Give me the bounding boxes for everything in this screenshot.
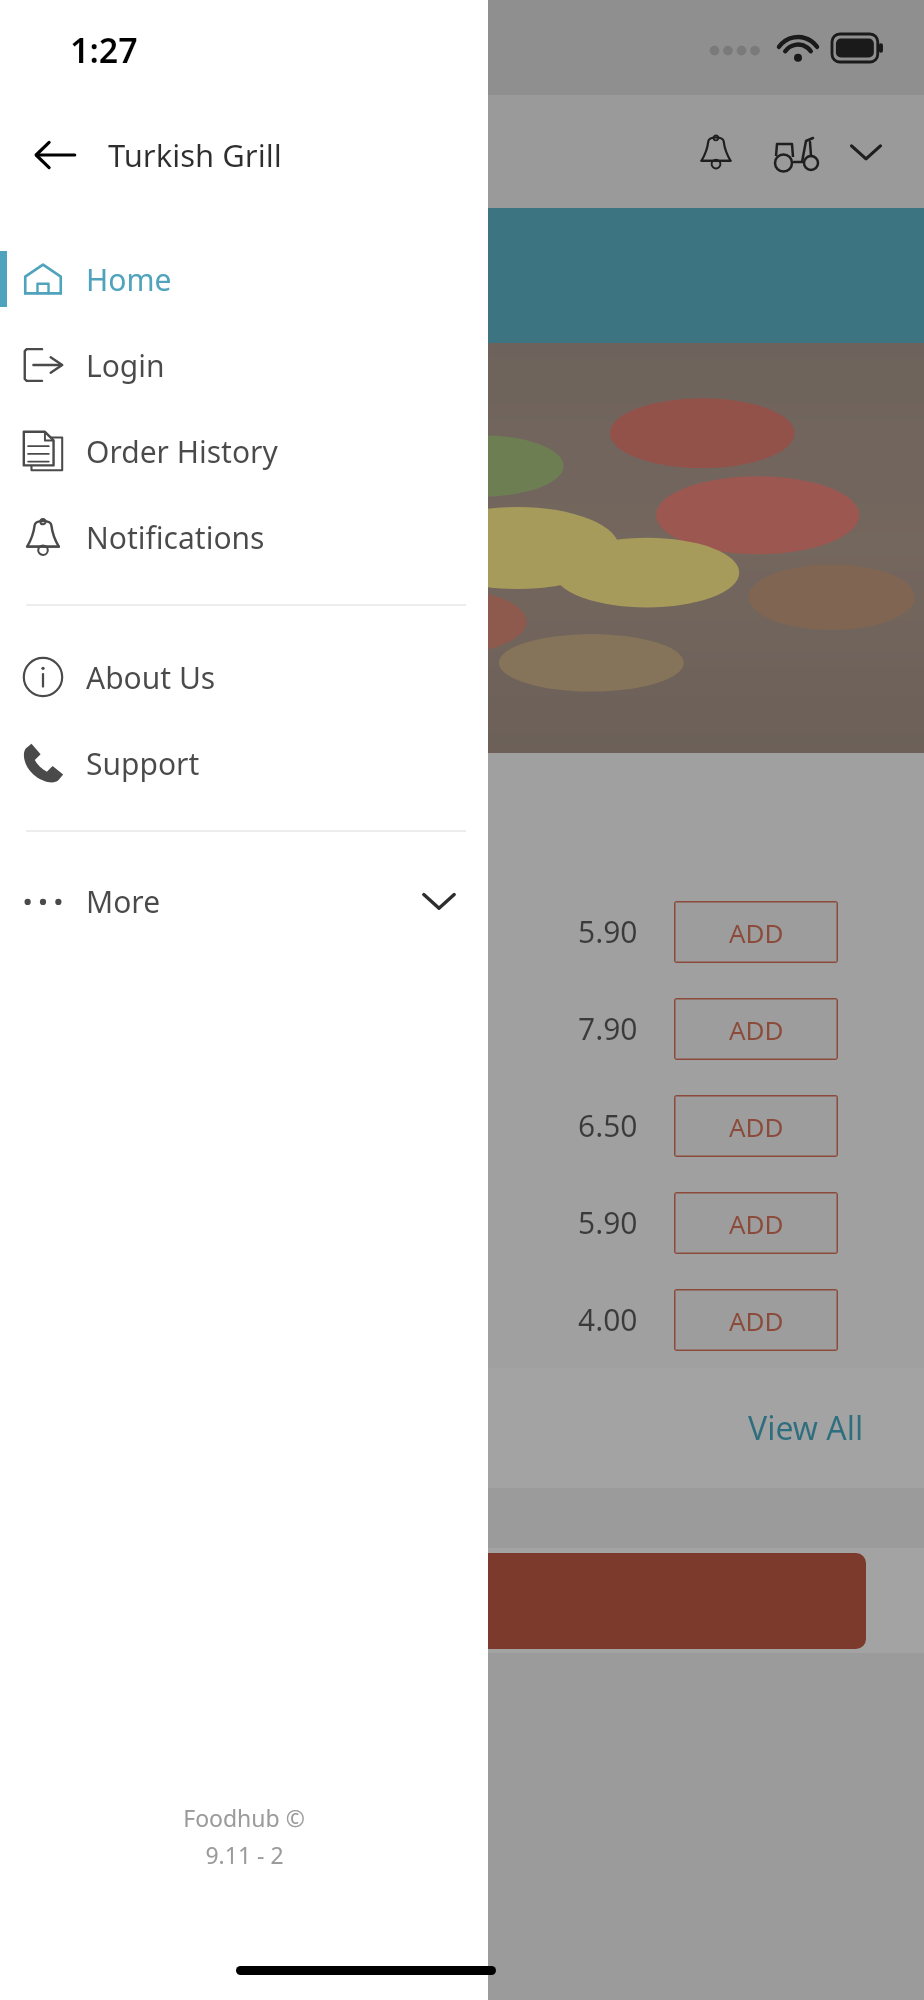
button[interactable]: Order History xyxy=(0,408,488,494)
staticText: View All xyxy=(748,1406,864,1450)
button[interactable]: About Us xyxy=(0,634,488,720)
staticText: ADD xyxy=(729,915,784,950)
staticText: Home xyxy=(86,259,172,300)
staticText: 9.11 - 2 xyxy=(205,1839,284,1870)
staticText: Support xyxy=(86,743,200,784)
button[interactable]: More xyxy=(0,858,488,944)
staticText: 5.90 xyxy=(578,911,638,952)
staticText: Foodhub © xyxy=(183,1802,305,1833)
staticText: ADD xyxy=(729,1012,784,1047)
button[interactable]: ADD xyxy=(674,1289,838,1351)
button[interactable]: ADD xyxy=(674,998,838,1060)
staticText: rder now for xyxy=(10,280,202,322)
staticText: 1:27 xyxy=(70,27,138,73)
staticText: Notifications xyxy=(86,517,265,558)
staticText: ADD xyxy=(729,1303,784,1338)
button[interactable]: Login xyxy=(0,322,488,408)
staticText: About Us xyxy=(86,657,216,698)
staticText: Order History xyxy=(86,431,278,472)
staticText: 7.90 xyxy=(578,1008,638,1049)
button[interactable]: ADD xyxy=(674,1095,838,1157)
staticText: Turkish Grill xyxy=(108,134,282,176)
button[interactable]: Support xyxy=(0,720,488,806)
staticText: ADD xyxy=(729,1109,784,1144)
staticText: 5.90 xyxy=(578,1202,638,1243)
staticText: 6.50 xyxy=(578,1105,638,1146)
button[interactable]: Expand xyxy=(838,124,894,180)
button[interactable]: View All xyxy=(748,1406,864,1450)
staticText: ADD xyxy=(729,1206,784,1241)
staticText: 4.00 xyxy=(578,1299,638,1340)
button[interactable]: Back xyxy=(26,126,84,184)
button[interactable]: Delivery xyxy=(764,120,828,184)
button[interactable]: Home xyxy=(0,236,488,322)
button[interactable]: ADD xyxy=(674,1192,838,1254)
button[interactable] xyxy=(0,1553,866,1649)
button[interactable]: Notifications xyxy=(684,120,748,184)
staticText: More xyxy=(86,881,161,922)
staticText: ed and will open xyxy=(10,230,263,272)
button[interactable]: Notifications xyxy=(0,494,488,580)
staticText: Login xyxy=(86,345,165,386)
button[interactable]: ADD xyxy=(674,901,838,963)
